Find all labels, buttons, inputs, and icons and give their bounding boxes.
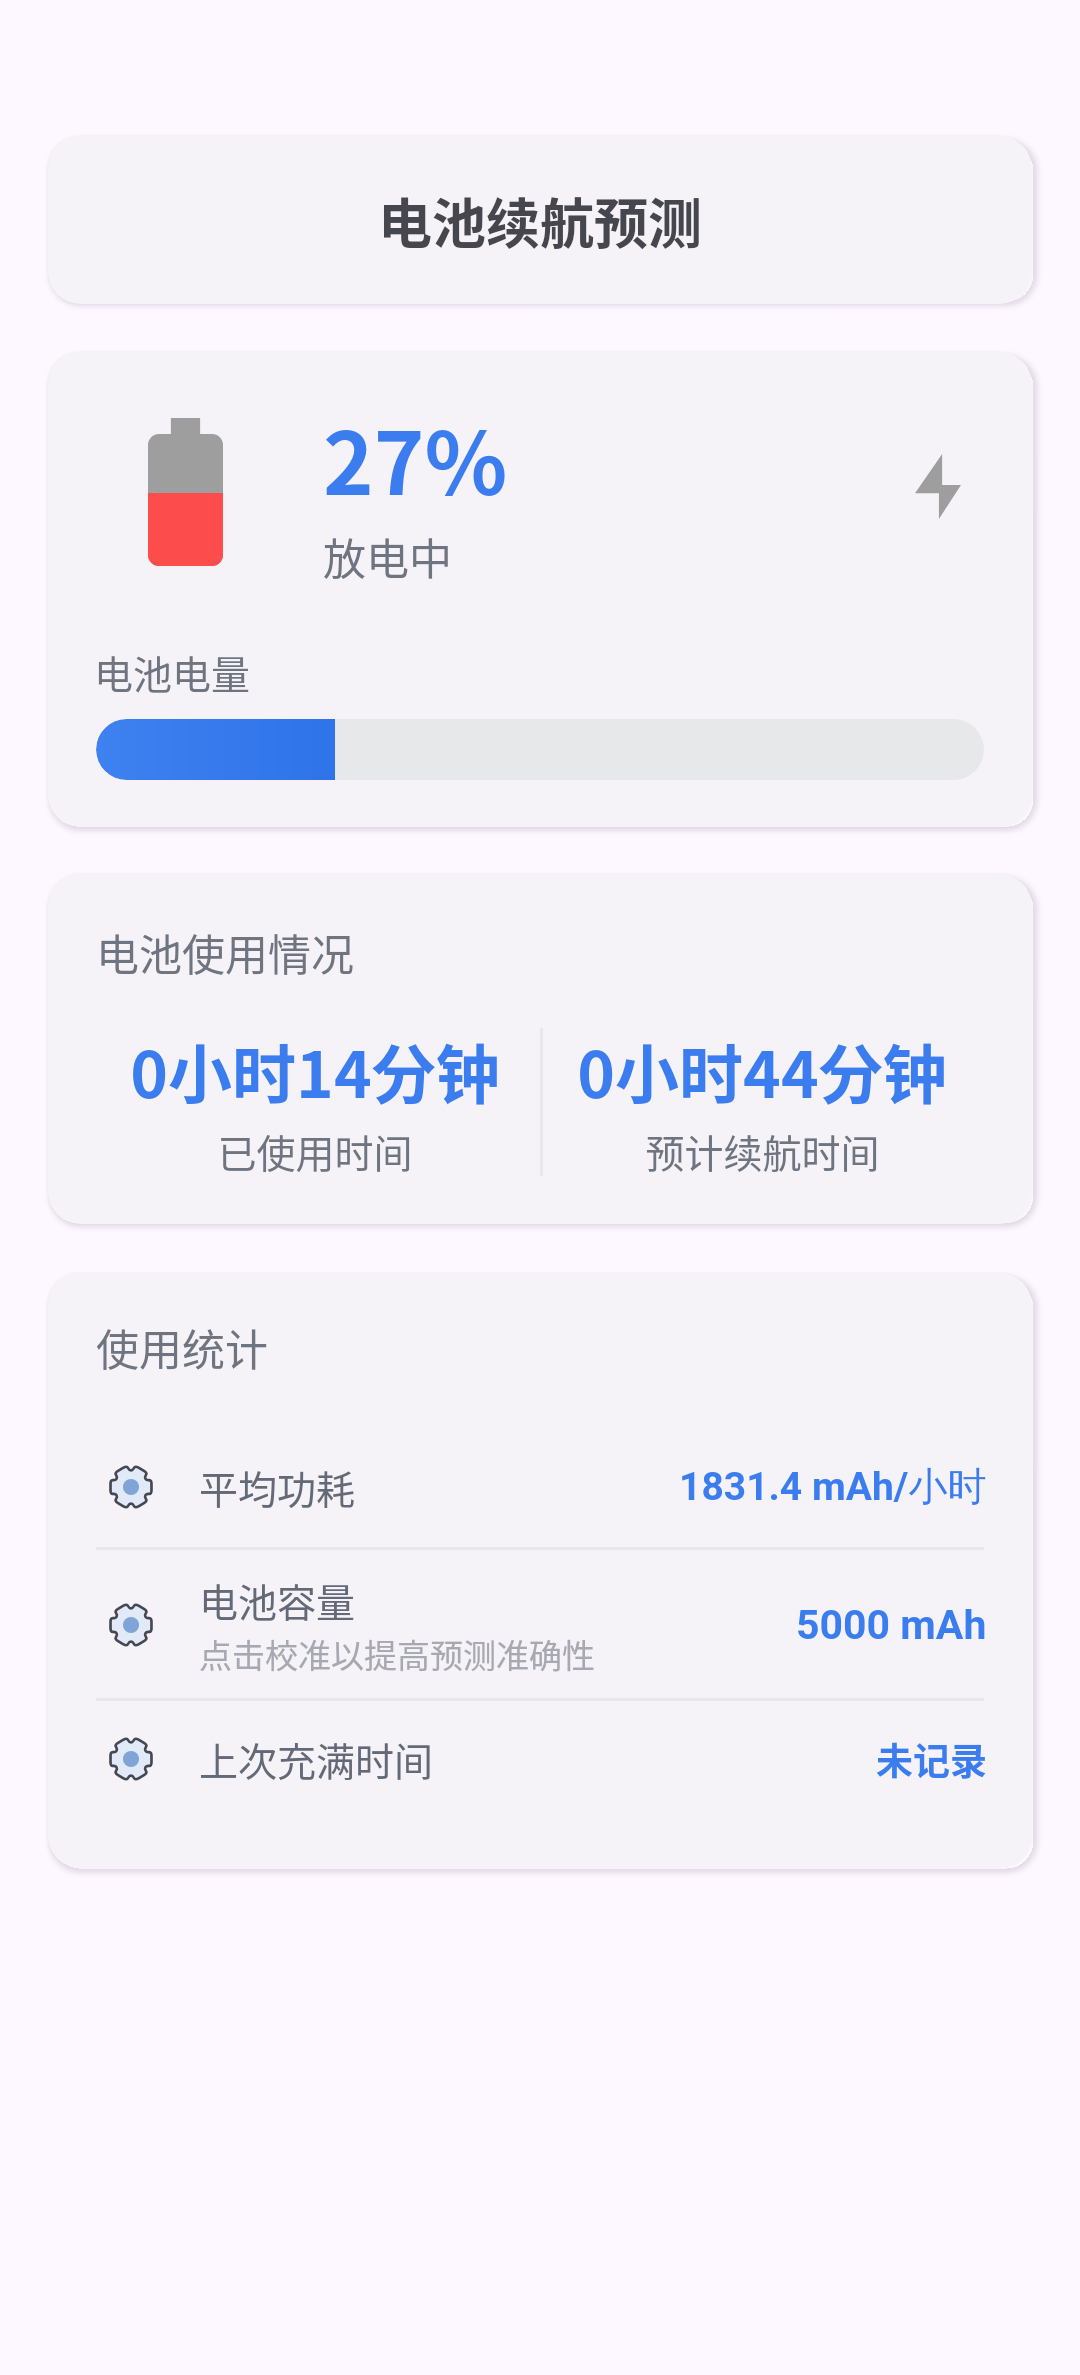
other: Detail — [108, 1736, 154, 1782]
staticText: 上次充满时间 — [199, 1731, 434, 1787]
staticText: 放电中 — [323, 525, 452, 587]
staticText: 0小时44分钟 — [577, 1024, 947, 1117]
staticText: 使用统计 — [96, 1316, 268, 1378]
staticText: 平均功耗 — [199, 1459, 356, 1515]
staticText: 电池电量 — [94, 644, 251, 700]
staticText: 27% — [323, 395, 508, 520]
staticText: 未记录 — [876, 1732, 987, 1786]
staticText: 电池续航预测 — [378, 181, 702, 259]
button[interactable]: Detail — [48, 1429, 1032, 1544]
button[interactable]: Detail — [48, 1550, 1032, 1699]
button[interactable]: 电池续航预测 — [48, 136, 1032, 304]
staticText: 预计续航时间 — [645, 1123, 880, 1179]
other: Detail — [108, 1602, 154, 1648]
other: Battery level 27 percent — [148, 418, 223, 566]
staticText: 已使用时间 — [217, 1123, 413, 1179]
staticText: 点击校准以提高预测准确性 — [199, 1630, 595, 1678]
button[interactable]: Detail — [48, 1699, 1032, 1819]
staticText: 电池容量 — [199, 1572, 356, 1628]
other: Detail — [108, 1464, 154, 1510]
staticText: 5000 mAh — [796, 1601, 987, 1649]
staticText: 1831.4 mAh/小时 — [679, 1462, 987, 1511]
staticText: 电池使用情况 — [96, 921, 354, 983]
other: Charging status — [915, 454, 961, 519]
staticText: 0小时14分钟 — [130, 1024, 500, 1117]
